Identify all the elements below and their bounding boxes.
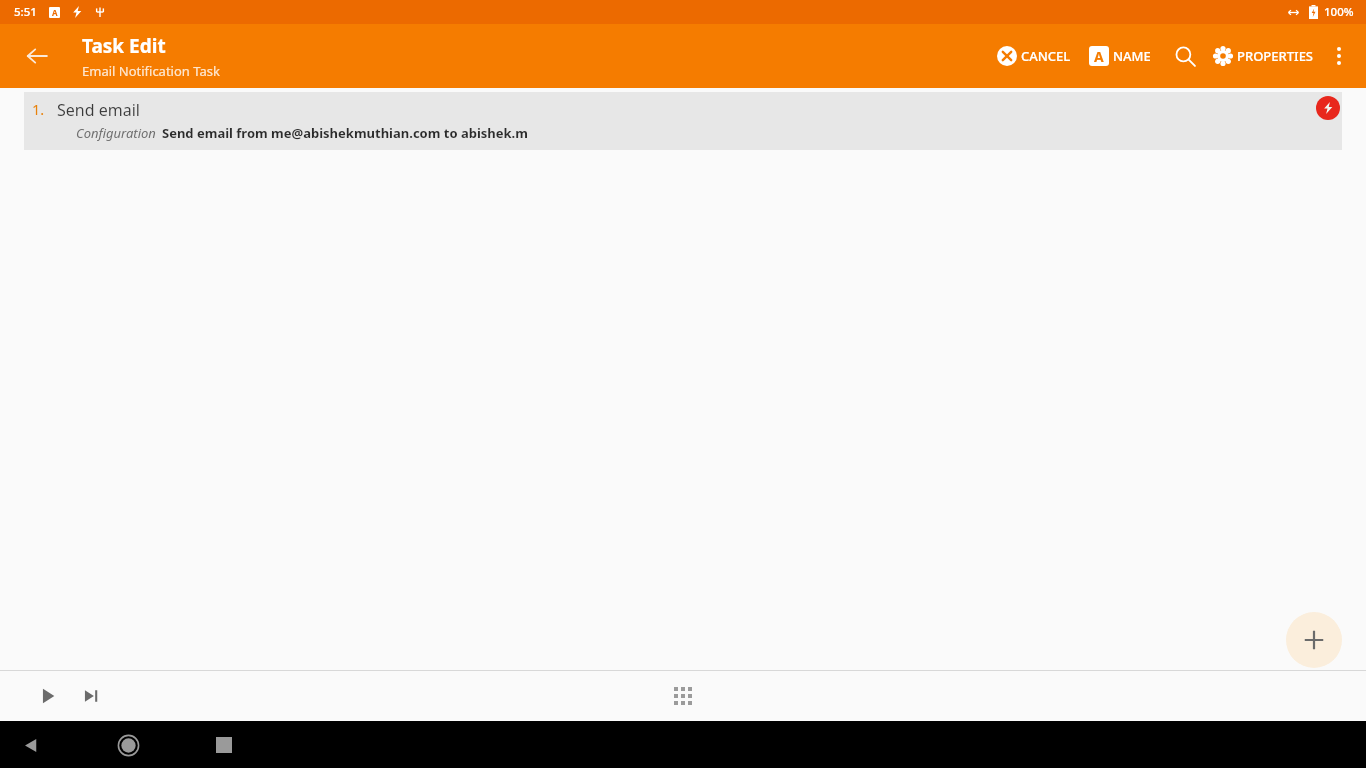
- staticText: Send email: [57, 99, 140, 121]
- staticText: CANCEL: [1021, 47, 1071, 65]
- button[interactable]: More options: [1318, 35, 1360, 77]
- button[interactable]: Play: [28, 676, 68, 716]
- button[interactable]: Apps: [661, 674, 705, 718]
- staticText: Task Edit: [82, 33, 166, 59]
- button[interactable]: 1.: [24, 92, 1342, 150]
- staticText: 5:51: [14, 4, 37, 20]
- staticText: Configuration: [76, 124, 156, 142]
- button[interactable]: Home: [107, 724, 149, 766]
- button[interactable]: PROPERTIES: [1213, 46, 1314, 66]
- button[interactable]: CANCEL: [997, 46, 1071, 66]
- button[interactable]: Recents: [203, 724, 245, 766]
- button[interactable]: Search: [1163, 34, 1207, 78]
- staticText: PROPERTIES: [1237, 47, 1314, 65]
- button[interactable]: Add action: [1286, 612, 1342, 668]
- staticText: Email Notification Task: [82, 62, 220, 80]
- staticText: 1.: [32, 99, 45, 119]
- staticText: A: [52, 7, 58, 18]
- button[interactable]: Step forward: [71, 676, 111, 716]
- button[interactable]: Back: [13, 32, 61, 80]
- staticText: Send email from me@abishekmuthian.com to…: [162, 124, 528, 142]
- button[interactable]: Error: [1316, 96, 1340, 120]
- button[interactable]: A: [1089, 46, 1151, 66]
- staticText: NAME: [1113, 47, 1151, 65]
- button[interactable]: Back: [10, 724, 52, 766]
- staticText: 100%: [1324, 4, 1354, 20]
- staticText: A: [1094, 47, 1104, 66]
